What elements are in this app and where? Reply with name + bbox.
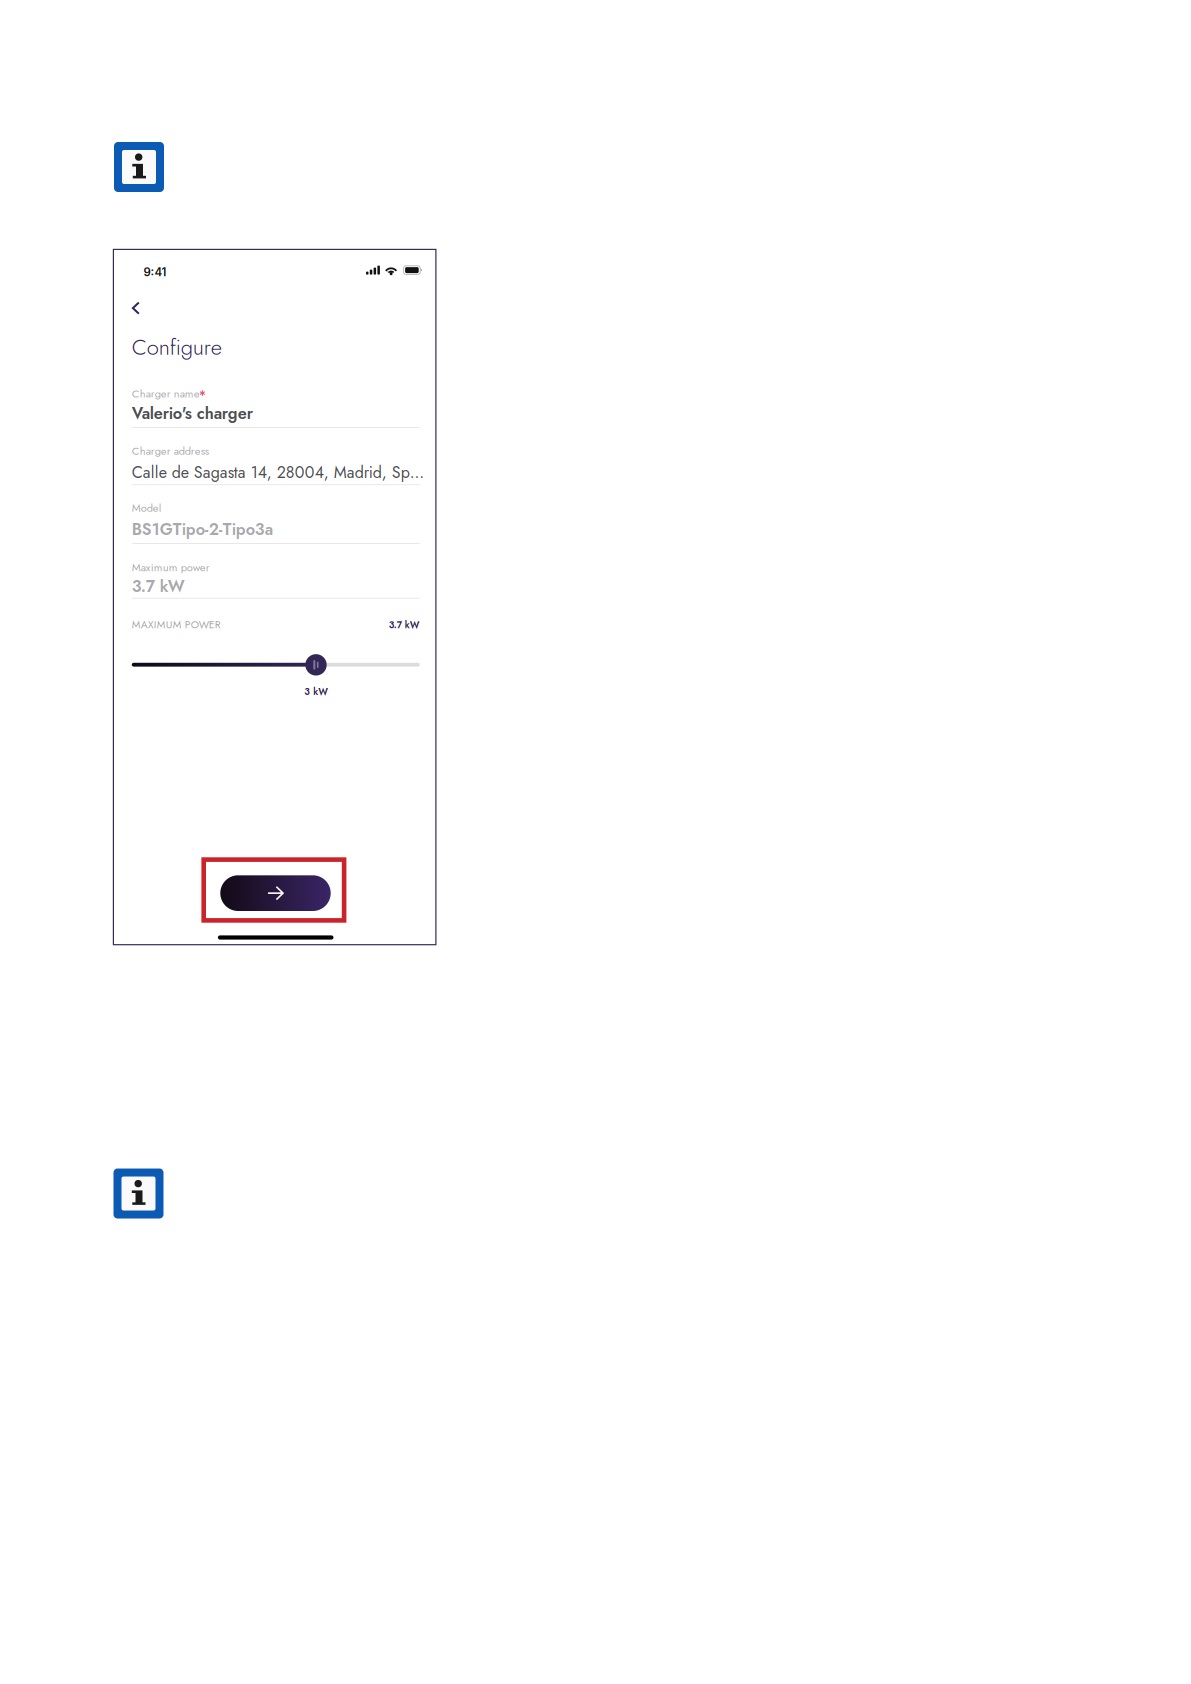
staticText: Model [132, 500, 162, 516]
staticText: 9:41 [143, 265, 166, 279]
staticText: MAXIMUM POWER [132, 617, 221, 632]
staticText: Configure [132, 331, 222, 363]
staticText: Charger name [132, 386, 200, 402]
button[interactable]: Charger address [132, 442, 420, 485]
staticText: Calle de Sagasta 14, 28004, Madrid, Sp… [132, 461, 424, 484]
staticText: 3.7 kW [389, 618, 420, 632]
button[interactable]: Continue [204, 860, 344, 920]
button[interactable]: Back [121, 294, 151, 323]
staticText: Maximum power [132, 559, 210, 575]
staticText: BS1GTipo-2-Tipo3a [132, 518, 273, 541]
staticText: Charger address [132, 443, 209, 459]
staticText: 3 kW [304, 685, 328, 698]
staticText: Valerio's charger [132, 402, 253, 425]
staticText: 3.7 kW [132, 574, 185, 598]
button[interactable]: Charger name [132, 385, 420, 428]
